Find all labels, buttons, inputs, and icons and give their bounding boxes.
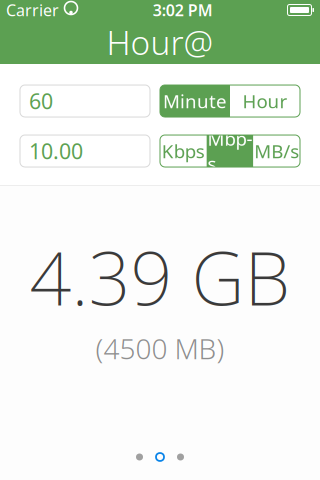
- staticText: Hour@: [106, 20, 213, 64]
- staticText: 3:02 PM: [153, 0, 213, 21]
- button[interactable]: 60: [20, 85, 150, 117]
- staticText: Hour: [242, 89, 287, 113]
- button[interactable]: Hour: [230, 85, 300, 117]
- staticText: Mbps: [207, 126, 252, 176]
- staticText: Minute: [163, 89, 227, 113]
- button[interactable]: Minute: [160, 85, 230, 117]
- button[interactable]: Kbps: [160, 135, 207, 167]
- staticText: Kbps: [162, 139, 205, 163]
- staticText: (4500 MB): [95, 330, 224, 367]
- staticText: 10.00: [29, 137, 83, 165]
- button[interactable]: Mbps: [207, 135, 253, 167]
- staticText: MB/s: [254, 139, 299, 163]
- staticText: 60: [29, 87, 53, 115]
- staticText: 4.39 GB: [29, 228, 290, 326]
- button[interactable]: 10.00: [20, 135, 150, 167]
- staticText: Carrier: [6, 0, 59, 21]
- button[interactable]: MB/s: [253, 135, 300, 167]
